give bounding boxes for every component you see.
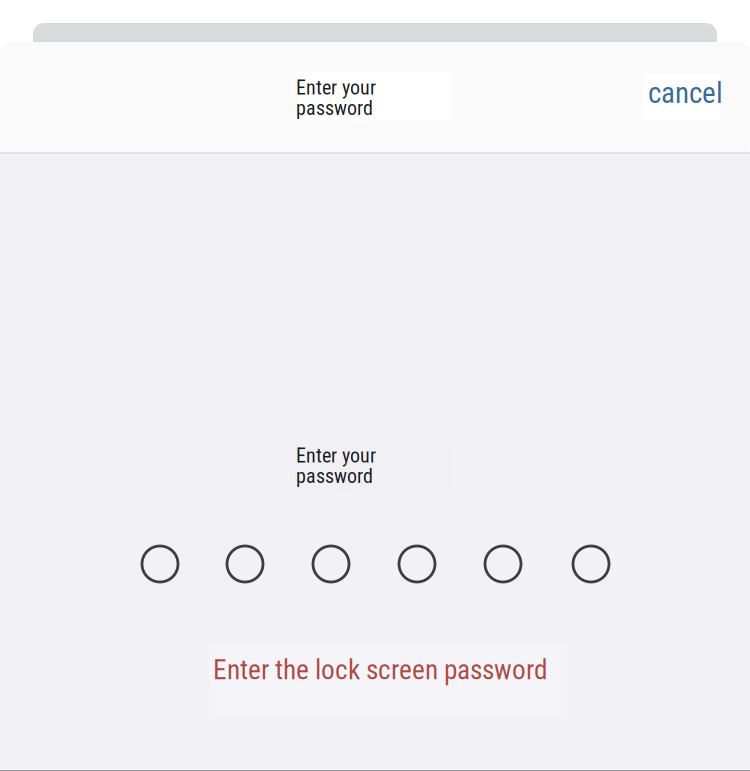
staticText: password [296, 96, 373, 120]
staticText: Enter your [296, 76, 376, 99]
staticText: cancel [648, 76, 723, 110]
staticText: Enter the lock screen password [213, 654, 548, 686]
button[interactable]: cancel [643, 74, 721, 120]
staticText: Enter your [296, 444, 376, 467]
staticText: password [296, 464, 373, 488]
button[interactable]: Password [140, 438, 740, 598]
